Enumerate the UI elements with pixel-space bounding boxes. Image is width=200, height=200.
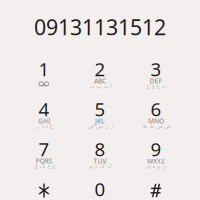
staticText: ث ج چ ح: [146, 83, 166, 89]
button[interactable]: 3: [129, 58, 183, 92]
staticText: DEF: [149, 77, 162, 85]
staticText: 4: [38, 97, 49, 121]
button[interactable]: 0: [73, 178, 127, 200]
button[interactable]: 6: [129, 98, 183, 132]
staticText: ا ب پ ت: [89, 83, 111, 89]
button[interactable]: Pound: [129, 181, 183, 200]
staticText: 6: [150, 97, 161, 121]
staticText: 9: [150, 137, 161, 161]
staticText: WXYZ: [147, 157, 165, 165]
button[interactable]: 2: [73, 58, 127, 92]
staticText: ص ض ط ظ: [142, 123, 170, 129]
staticText: TUV: [93, 157, 106, 165]
button[interactable]: 9: [129, 138, 183, 172]
button[interactable]: 8: [73, 138, 127, 172]
staticText: 7: [38, 137, 49, 161]
button[interactable]: Star: [17, 181, 71, 200]
staticText: 1: [38, 57, 49, 81]
button[interactable]: 7: [17, 138, 71, 172]
staticText: 8: [94, 137, 105, 161]
staticText: 0: [94, 177, 105, 200]
staticText: ک گ ل م: [88, 163, 111, 169]
button[interactable]: 09131131512: [34, 13, 166, 41]
staticText: MNO: [148, 117, 164, 125]
staticText: ع غ ف ق: [33, 163, 55, 169]
staticText: JKL: [95, 117, 105, 125]
staticText: ن و ه ی: [146, 163, 166, 169]
staticText: PQRS: [35, 157, 52, 165]
staticText: 2: [94, 57, 105, 81]
button[interactable]: 1: [17, 58, 71, 92]
staticText: 5: [94, 97, 105, 121]
staticText: GHI: [38, 117, 50, 125]
staticText: 09131131512: [34, 13, 166, 41]
button[interactable]: 5: [73, 98, 127, 132]
staticText: 3: [150, 57, 161, 81]
staticText: ز ژ س ش: [87, 123, 113, 129]
staticText: خ د ذ ر: [36, 123, 52, 129]
staticText: ABC: [94, 77, 106, 85]
button[interactable]: 4: [17, 98, 71, 132]
